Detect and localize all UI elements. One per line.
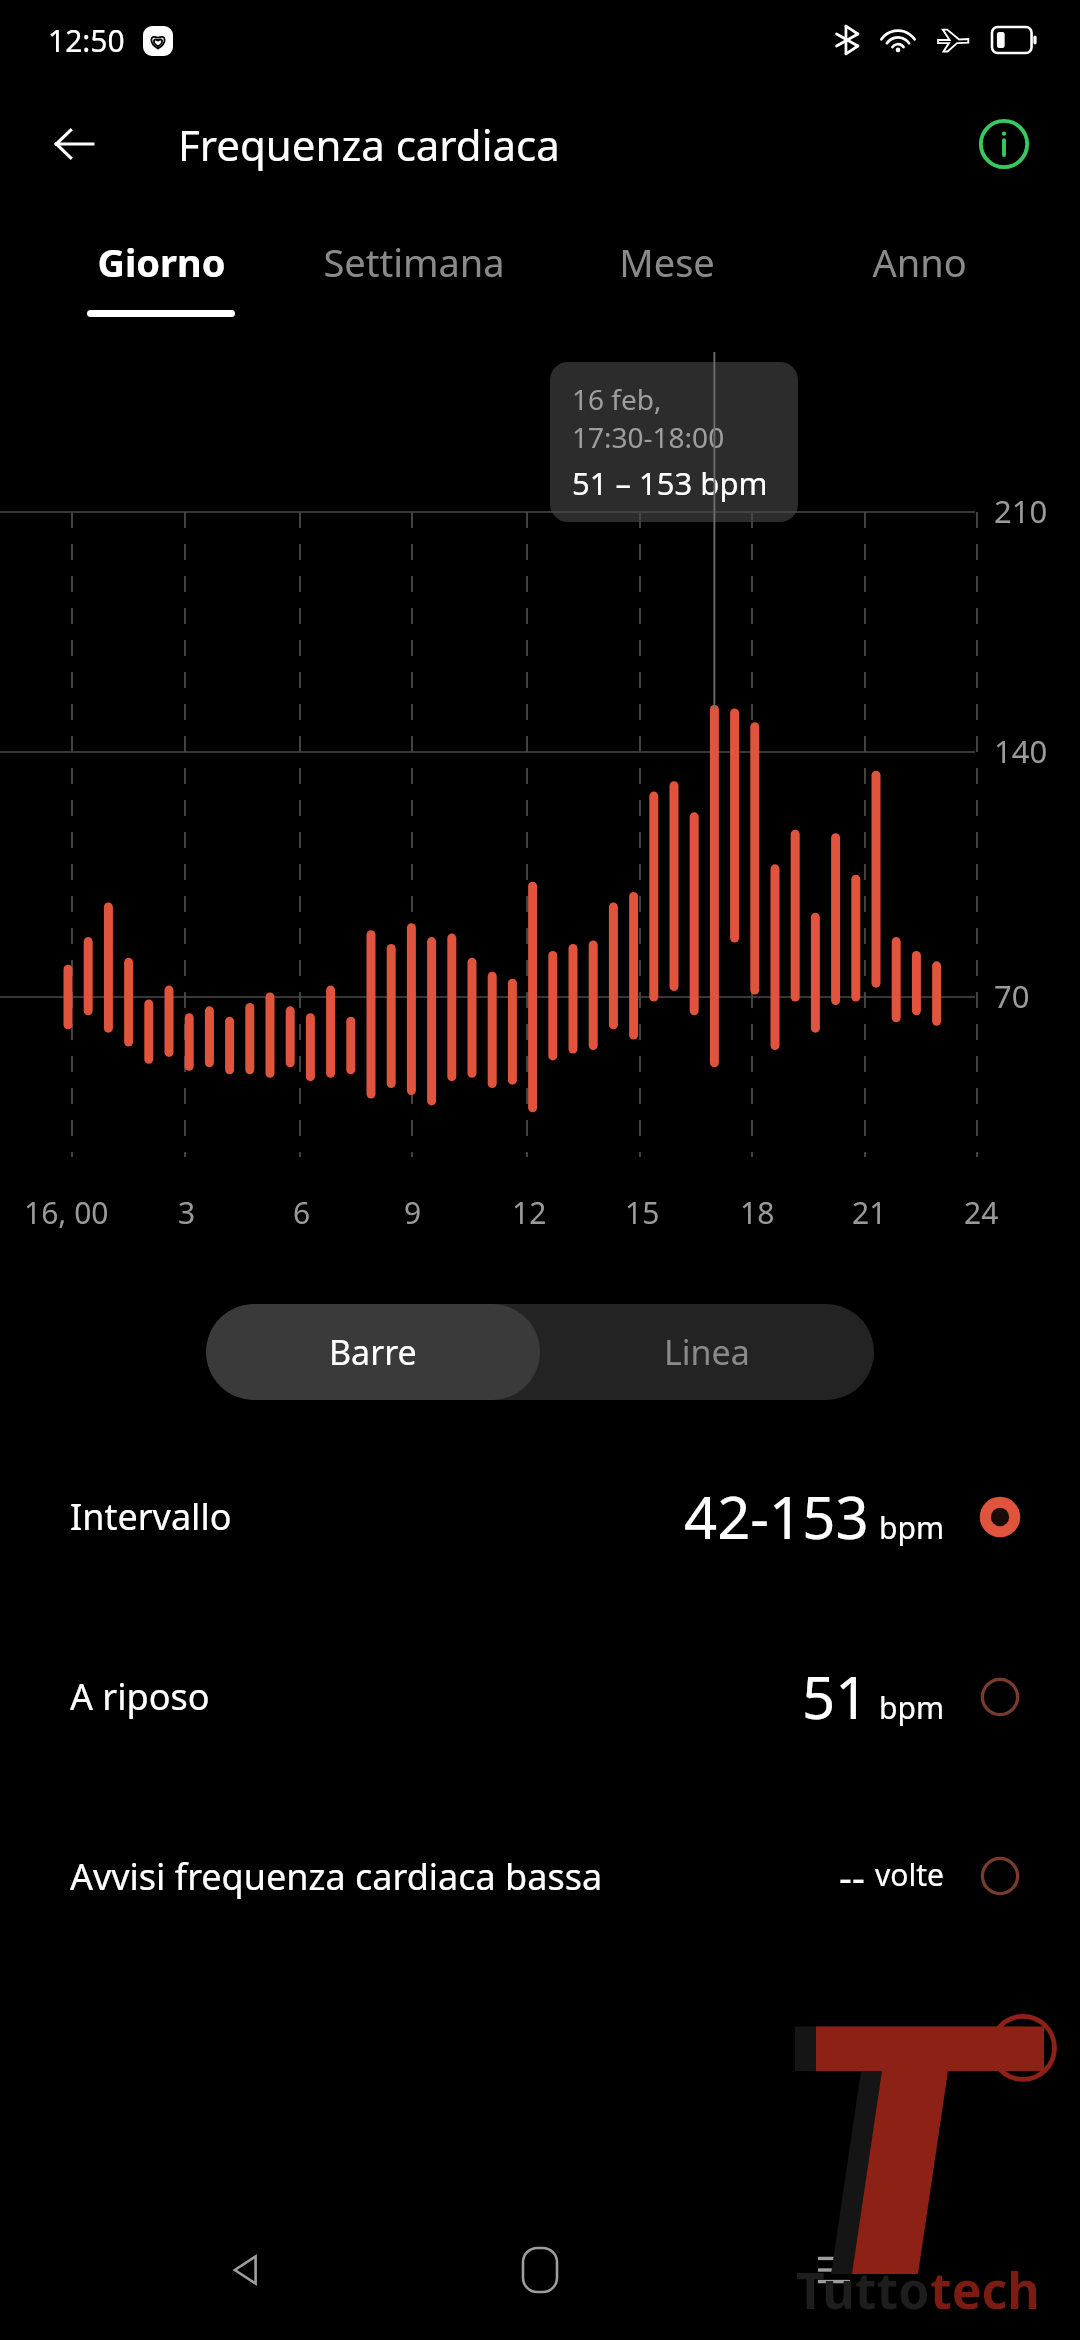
button[interactable]: Recent apps	[786, 2222, 882, 2318]
staticText: 15	[625, 1192, 660, 1233]
button[interactable]: Info	[968, 108, 1040, 180]
staticText: Settimana	[323, 236, 505, 288]
button[interactable]: Home	[492, 2222, 588, 2318]
staticText: 12:50	[48, 20, 125, 61]
staticText: 24	[964, 1192, 999, 1233]
button[interactable]: Mese	[540, 208, 793, 310]
staticText: 3	[178, 1192, 196, 1233]
staticText: 6	[293, 1192, 311, 1233]
button[interactable]: Giorno	[34, 208, 287, 317]
staticText: 16 feb, 17:30-18:00	[572, 380, 776, 456]
button[interactable]: A riposo	[0, 1606, 1080, 1786]
staticText: Mese	[619, 236, 715, 288]
staticText: Intervallo	[70, 1492, 232, 1541]
staticText: 210	[994, 490, 1048, 532]
staticText: Frequenza cardiaca	[178, 116, 560, 173]
staticText: 51	[802, 1657, 869, 1736]
staticText: Barre	[329, 1329, 417, 1375]
staticText: 16, 00	[24, 1192, 109, 1233]
staticText: 9	[404, 1192, 422, 1233]
staticText: 18	[740, 1192, 775, 1233]
staticText: Anno	[872, 236, 967, 288]
staticText: Avvisi frequenza cardiaca bassa	[70, 1852, 603, 1901]
staticText: Giorno	[97, 236, 226, 288]
button[interactable]: Linea	[540, 1304, 874, 1400]
staticText: 12	[512, 1192, 547, 1233]
button[interactable]: Intervallo	[0, 1426, 1080, 1606]
staticText: --	[839, 1849, 865, 1903]
staticText: volte	[875, 1854, 944, 1895]
staticText: bpm	[879, 1687, 944, 1728]
button[interactable]: Anno	[793, 208, 1046, 310]
staticText: 51 – 153 bpm	[572, 462, 768, 504]
staticText: Tutto	[796, 2256, 930, 2324]
staticText: bpm	[879, 1507, 944, 1548]
staticText: tech	[930, 2256, 1040, 2324]
button[interactable]: Avvisi frequenza cardiaca bassa	[0, 1786, 1080, 1966]
staticText: 70	[994, 975, 1030, 1017]
button[interactable]: Back	[42, 112, 106, 176]
staticText: 42-153	[684, 1477, 869, 1556]
button[interactable]: Settimana	[287, 208, 540, 310]
staticText: 21	[852, 1192, 887, 1233]
button[interactable]: Barre	[206, 1304, 540, 1400]
staticText: 140	[994, 730, 1048, 772]
button[interactable]: Back	[198, 2222, 294, 2318]
staticText: Linea	[664, 1329, 750, 1375]
staticText: A riposo	[70, 1672, 210, 1721]
